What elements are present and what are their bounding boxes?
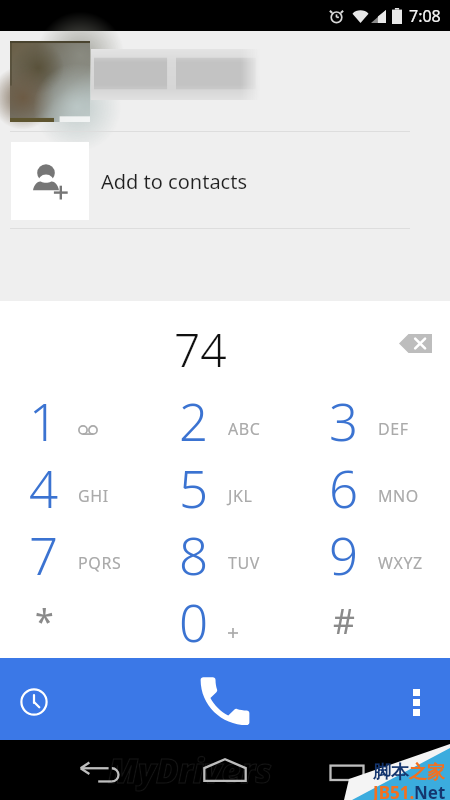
staticText: Net (414, 781, 446, 800)
staticText: # (333, 598, 355, 644)
button[interactable]: Call (196, 672, 254, 730)
staticText: 2 (179, 386, 209, 453)
button[interactable]: Recent apps (325, 753, 373, 787)
staticText: MNO (378, 485, 419, 507)
staticText: 之家 (409, 761, 445, 784)
staticText: 4 (29, 453, 59, 520)
button[interactable]: 9 (300, 520, 450, 587)
button[interactable]: Back (73, 753, 125, 787)
staticText: JB51. (373, 781, 415, 800)
button[interactable]: 6 (300, 453, 450, 520)
staticText: Add to contacts (101, 168, 247, 195)
button[interactable]: # (300, 587, 450, 654)
button[interactable]: 5 (150, 453, 300, 520)
button[interactable]: Backspace (390, 321, 440, 365)
staticText: 脚本 (373, 761, 409, 784)
button[interactable]: More options (392, 678, 440, 726)
staticText: WXYZ (378, 552, 423, 574)
button[interactable]: 3 (300, 386, 450, 453)
staticText: TUV (228, 552, 260, 574)
button[interactable]: 4 (0, 453, 150, 520)
staticText: 8 (179, 520, 209, 587)
staticText: PQRS (78, 552, 122, 574)
staticText: 74 (174, 318, 227, 381)
staticText: GHI (78, 485, 109, 507)
staticText: 7 (29, 520, 59, 587)
button[interactable]: Contact photo (10, 41, 90, 122)
staticText: 5 (179, 453, 209, 520)
button[interactable]: Home (199, 750, 251, 788)
staticText: * (35, 598, 54, 644)
button[interactable]: * (0, 587, 150, 654)
staticText: MyDrivers (108, 748, 272, 793)
button[interactable]: 2 (150, 386, 300, 453)
staticText: JKL (228, 485, 253, 507)
button[interactable]: 7 (0, 520, 150, 587)
staticText: 7:08 (409, 5, 441, 27)
staticText: ABC (228, 418, 261, 440)
staticText: 9 (329, 520, 359, 587)
staticText: DEF (378, 418, 409, 440)
button[interactable]: Add to contacts (0, 133, 450, 228)
button[interactable]: Recent calls (10, 678, 58, 726)
button[interactable]: 0 (150, 587, 300, 654)
button[interactable]: 1 (0, 386, 150, 453)
staticText: 1 (29, 386, 59, 453)
staticText: 0 (179, 587, 209, 654)
staticText: 6 (329, 453, 359, 520)
button[interactable]: 8 (150, 520, 300, 587)
staticText: 3 (329, 386, 359, 453)
